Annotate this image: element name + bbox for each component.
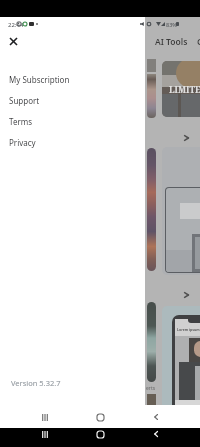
button[interactable]: Recents — [36, 408, 54, 426]
button[interactable]: Recents — [36, 425, 54, 443]
button[interactable]: Terms — [0, 111, 145, 132]
staticText: C — [197, 36, 200, 48]
button[interactable]: Home — [91, 425, 109, 443]
button[interactable]: More — [178, 130, 194, 146]
button[interactable]: Privacy — [0, 132, 145, 153]
button[interactable]: Home — [91, 408, 109, 426]
staticText: Support — [9, 95, 40, 106]
staticText: 83% — [166, 21, 177, 28]
button[interactable]: LIMITED — [162, 61, 200, 117]
button[interactable]: Close — [2, 30, 24, 52]
staticText: Privacy — [9, 137, 36, 148]
staticText: 22:44 — [8, 21, 24, 29]
staticText: Lorem ipsum — [177, 327, 200, 332]
button[interactable]: More — [178, 287, 194, 303]
staticText: AI Tools — [155, 36, 188, 48]
staticText: My Subscription — [9, 74, 70, 85]
button[interactable] — [147, 302, 156, 382]
button[interactable] — [147, 74, 156, 118]
button[interactable] — [147, 148, 156, 271]
staticText: erts — [146, 385, 156, 392]
staticText: Version 5.32.7 — [11, 378, 61, 388]
button[interactable] — [162, 147, 200, 275]
button[interactable]: Back — [147, 425, 165, 443]
staticText: LIMITED — [169, 84, 200, 96]
button[interactable]: Lorem ipsum — [162, 306, 200, 422]
button[interactable]: Back — [147, 408, 165, 426]
staticText: Terms — [9, 116, 33, 127]
button[interactable]: Support — [0, 90, 145, 111]
button[interactable]: My Subscription — [0, 69, 145, 90]
